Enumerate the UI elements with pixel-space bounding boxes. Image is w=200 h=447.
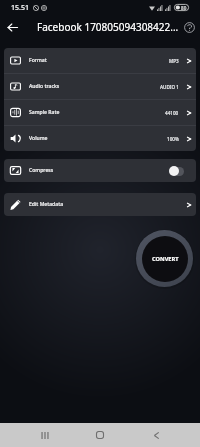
button[interactable]: Back xyxy=(0,15,24,39)
button[interactable]: Recents xyxy=(28,423,62,447)
staticText: 100% xyxy=(167,136,179,142)
staticText: MP3 xyxy=(169,58,179,64)
button[interactable]: Help xyxy=(179,16,200,38)
staticText: 15.51 xyxy=(11,3,29,13)
staticText: Format xyxy=(29,57,47,64)
staticText: AUDIO 1 xyxy=(160,84,179,90)
button[interactable]: Home xyxy=(83,423,117,447)
button[interactable]: Sample Rate xyxy=(4,100,196,125)
button[interactable]: Compress xyxy=(4,159,196,182)
button[interactable]: CONVERT xyxy=(142,236,188,282)
staticText: Sample Rate xyxy=(29,109,60,116)
button[interactable]: Volume xyxy=(4,126,196,151)
button[interactable]: Format xyxy=(4,48,196,73)
staticText: CONVERT xyxy=(152,255,179,263)
staticText: Facebook 170805094308422... xyxy=(37,20,179,34)
staticText: Compress xyxy=(29,167,54,174)
staticText: 80 xyxy=(181,5,187,11)
staticText: Audio tracks xyxy=(29,83,60,90)
staticText: Edit Metadata xyxy=(29,201,64,208)
staticText: Volume xyxy=(29,135,48,142)
staticText: 44100 xyxy=(165,110,179,116)
button[interactable]: Audio tracks xyxy=(4,74,196,99)
button[interactable]: Back xyxy=(139,423,173,447)
button[interactable]: Edit Metadata xyxy=(4,193,196,216)
